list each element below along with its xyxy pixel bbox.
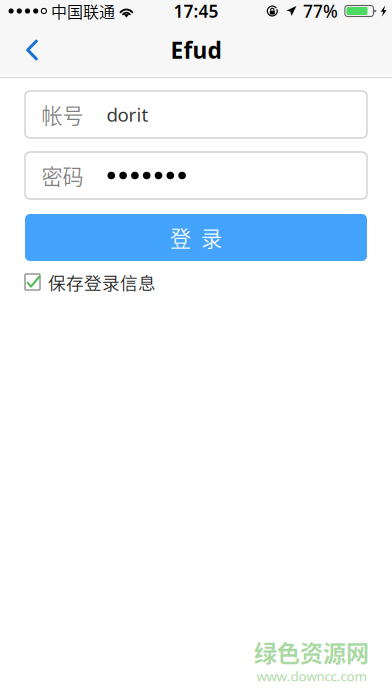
- staticText: dorit: [106, 102, 148, 127]
- staticText: 保存登录信息: [48, 269, 156, 295]
- staticText: 登 录: [170, 222, 222, 253]
- button[interactable]: 帐号: [25, 91, 367, 138]
- staticText: 绿色资源网: [254, 635, 369, 668]
- button[interactable]: 登 录: [25, 214, 367, 261]
- staticText: 77%: [303, 0, 338, 22]
- staticText: www.downcc.com: [256, 667, 366, 685]
- button[interactable]: Back: [0, 28, 70, 72]
- staticText: 17:45: [173, 0, 218, 22]
- button[interactable]: 密码: [25, 152, 367, 199]
- staticText: 密码: [41, 160, 83, 191]
- staticText: Efud: [170, 35, 221, 65]
- staticText: 帐号: [41, 99, 83, 130]
- button[interactable]: 保存登录信息: [25, 273, 367, 291]
- staticText: 中国联通: [51, 0, 115, 23]
